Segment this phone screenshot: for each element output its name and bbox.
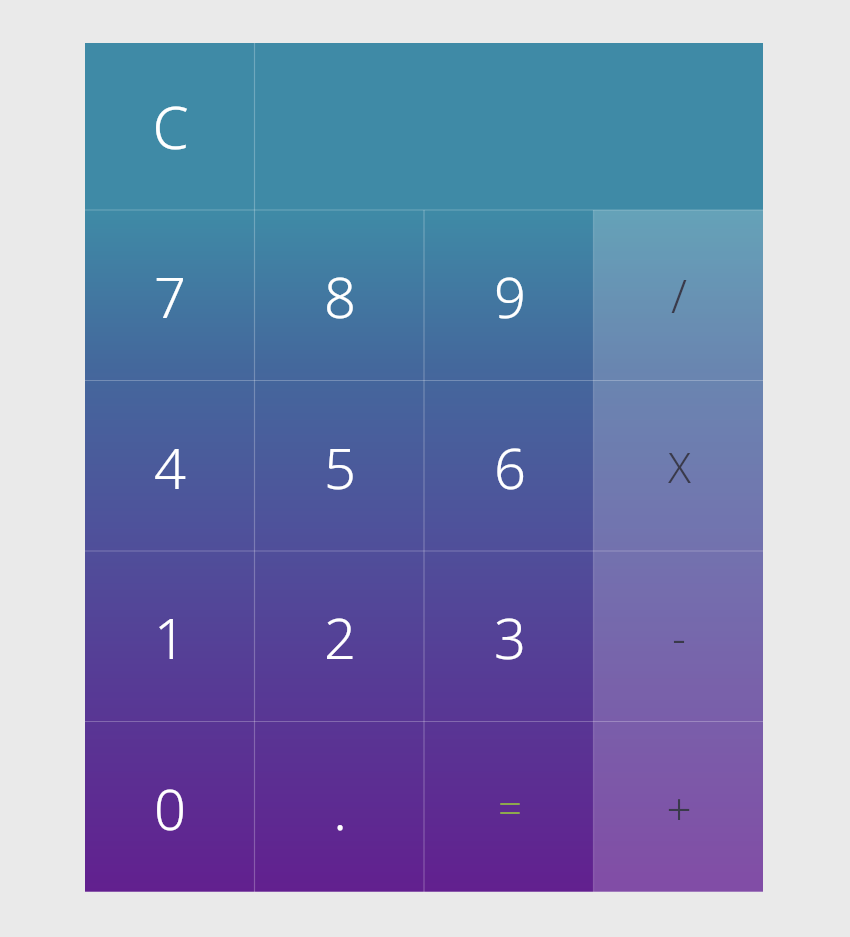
- button[interactable]: +: [595, 722, 763, 892]
- staticText: 9: [494, 258, 526, 334]
- button[interactable]: 8: [255, 210, 425, 381]
- button[interactable]: 4: [85, 381, 255, 552]
- button[interactable]: 9: [425, 210, 595, 381]
- staticText: =: [498, 779, 522, 836]
- button[interactable]: 3: [425, 551, 595, 722]
- button[interactable]: 5: [255, 381, 425, 552]
- staticText: 6: [494, 429, 526, 505]
- staticText: /: [671, 264, 687, 327]
- button[interactable]: X: [595, 381, 763, 552]
- button[interactable]: -: [595, 551, 763, 722]
- staticText: 2: [324, 599, 356, 675]
- staticText: 4: [154, 429, 186, 505]
- staticText: +: [666, 778, 692, 838]
- button[interactable]: 6: [425, 381, 595, 552]
- button[interactable]: 1: [85, 551, 255, 722]
- staticText: 8: [324, 258, 356, 334]
- staticText: .: [333, 770, 347, 846]
- staticText: 7: [154, 258, 186, 334]
- button[interactable]: 2: [255, 551, 425, 722]
- staticText: -: [672, 608, 686, 665]
- button[interactable]: /: [595, 210, 763, 381]
- staticText: 5: [324, 429, 356, 505]
- staticText: 0: [154, 770, 186, 846]
- button[interactable]: 0: [85, 722, 255, 892]
- button[interactable]: C: [85, 43, 255, 210]
- button[interactable]: .: [255, 722, 425, 892]
- staticText: 3: [494, 599, 526, 675]
- staticText: X: [668, 438, 691, 495]
- staticText: 1: [154, 599, 186, 675]
- staticText: C: [152, 87, 189, 166]
- button[interactable]: =: [425, 722, 595, 892]
- button[interactable]: 7: [85, 210, 255, 381]
